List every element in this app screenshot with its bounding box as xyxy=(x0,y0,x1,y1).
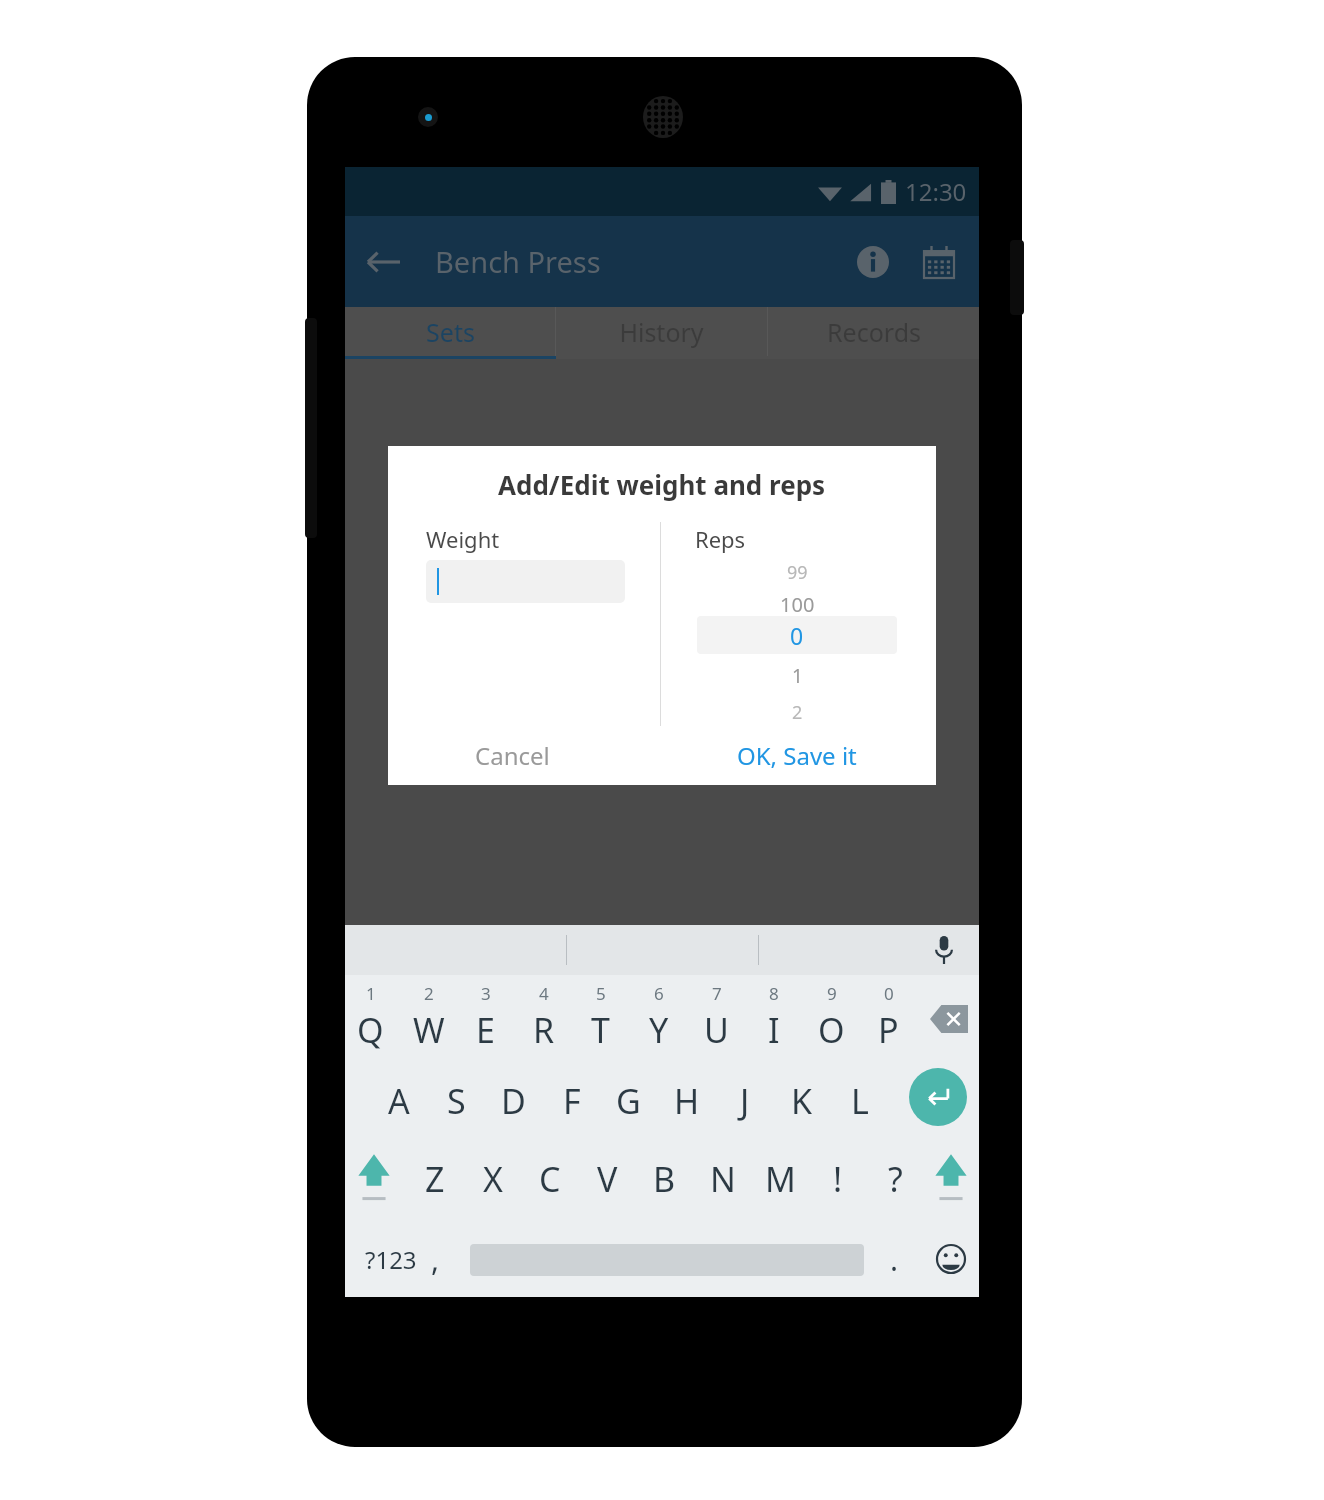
staticText: Y xyxy=(649,1007,669,1053)
button[interactable]: M xyxy=(752,1143,809,1215)
button[interactable]: 6 xyxy=(630,975,687,1059)
button[interactable]: Emoji xyxy=(925,1233,977,1285)
button[interactable]: F xyxy=(543,1059,600,1143)
button[interactable]: ! xyxy=(809,1143,866,1215)
button[interactable]: OK, Save it xyxy=(727,735,867,775)
staticText: S xyxy=(447,1078,466,1124)
staticText: 100 xyxy=(780,591,815,618)
button[interactable]: H xyxy=(658,1059,715,1143)
staticText: A xyxy=(388,1078,410,1124)
staticText: 99 xyxy=(787,560,808,585)
button[interactable]: G xyxy=(600,1059,657,1143)
staticText: , xyxy=(431,1239,440,1280)
staticText: 5 xyxy=(596,982,606,1005)
button[interactable]: , xyxy=(407,1233,463,1285)
staticText: 7 xyxy=(712,982,722,1005)
staticText: Q xyxy=(357,1007,384,1053)
staticText: Reps xyxy=(695,524,746,554)
staticText: Cancel xyxy=(475,739,550,772)
button[interactable]: 4 xyxy=(515,975,572,1059)
button[interactable]: B xyxy=(636,1143,693,1215)
staticText: History xyxy=(619,315,704,349)
button[interactable]: Sets xyxy=(345,307,555,356)
button[interactable]: Back xyxy=(355,234,411,290)
staticText: I xyxy=(768,1007,780,1053)
button[interactable] xyxy=(426,560,625,603)
staticText: 6 xyxy=(654,982,664,1005)
button[interactable]: 0 xyxy=(860,975,917,1059)
staticText: 2 xyxy=(424,982,434,1005)
staticText: . xyxy=(890,1239,899,1280)
button[interactable]: 0 xyxy=(697,616,897,654)
button[interactable]: 99 xyxy=(697,557,897,587)
staticText: U xyxy=(704,1007,729,1053)
button[interactable]: L xyxy=(831,1059,888,1143)
button[interactable]: 1 xyxy=(697,661,897,691)
button[interactable]: Shift xyxy=(347,1151,401,1213)
staticText: N xyxy=(710,1156,736,1202)
staticText: O xyxy=(818,1007,845,1053)
staticText: H xyxy=(674,1078,700,1124)
button[interactable]: 9 xyxy=(803,975,860,1059)
staticText: Add/Edit weight and reps xyxy=(498,467,826,502)
button[interactable]: N xyxy=(694,1143,751,1215)
button[interactable]: X xyxy=(464,1143,521,1215)
button[interactable]: 3 xyxy=(457,975,514,1059)
staticText: B xyxy=(653,1156,676,1202)
staticText: T xyxy=(591,1007,610,1053)
staticText: X xyxy=(483,1156,503,1202)
button[interactable]: J xyxy=(716,1059,773,1143)
staticText: ! xyxy=(833,1156,843,1202)
staticText: 0 xyxy=(884,982,894,1005)
staticText: Z xyxy=(425,1156,445,1202)
staticText: 0 xyxy=(790,620,804,651)
staticText: Weight xyxy=(426,524,500,554)
button[interactable]: A xyxy=(370,1059,427,1143)
staticText: R xyxy=(533,1007,555,1053)
button[interactable]: S xyxy=(428,1059,485,1143)
button[interactable]: Z xyxy=(406,1143,463,1215)
button[interactable]: D xyxy=(485,1059,542,1143)
staticText: E xyxy=(476,1007,495,1053)
button[interactable]: 7 xyxy=(688,975,745,1059)
staticText: Sets xyxy=(426,315,475,349)
staticText: C xyxy=(539,1156,561,1202)
staticText: 3 xyxy=(481,982,491,1005)
button[interactable]: K xyxy=(773,1059,830,1143)
staticText: J xyxy=(740,1078,750,1124)
staticText: 12:30 xyxy=(905,175,967,208)
staticText: Bench Press xyxy=(435,242,601,281)
button[interactable]: 8 xyxy=(745,975,802,1059)
button[interactable]: Calendar xyxy=(913,236,965,288)
button[interactable]: Enter xyxy=(909,1068,967,1126)
button[interactable]: 2 xyxy=(400,975,457,1059)
staticText: F xyxy=(563,1078,581,1124)
button[interactable]: Info xyxy=(847,236,899,288)
button[interactable]: Voice input xyxy=(923,929,965,971)
staticText: ?123 xyxy=(365,1243,417,1276)
staticText: Records xyxy=(827,315,921,349)
button[interactable]: Records xyxy=(768,307,979,356)
button[interactable]: Shift xyxy=(924,1151,978,1213)
button[interactable]: ?123 xyxy=(353,1233,429,1285)
staticText: L xyxy=(851,1078,869,1124)
button[interactable]: 100 xyxy=(697,589,897,619)
button[interactable]: 1 xyxy=(342,975,399,1059)
button[interactable]: Backspace xyxy=(922,995,976,1043)
button[interactable]: C xyxy=(521,1143,578,1215)
button[interactable]: 2 xyxy=(697,697,897,727)
button[interactable]: History xyxy=(556,307,767,356)
button[interactable]: V xyxy=(579,1143,636,1215)
staticText: 9 xyxy=(827,982,837,1005)
staticText: M xyxy=(765,1156,796,1202)
staticText: OK, Save it xyxy=(737,739,857,772)
staticText: D xyxy=(501,1078,526,1124)
staticText: 1 xyxy=(366,982,376,1005)
button[interactable]: ? xyxy=(867,1143,924,1215)
staticText: 8 xyxy=(769,982,779,1005)
button[interactable]: 5 xyxy=(572,975,629,1059)
button[interactable]: Cancel xyxy=(464,735,560,775)
staticText: K xyxy=(791,1078,813,1124)
button[interactable]: . xyxy=(867,1233,921,1285)
